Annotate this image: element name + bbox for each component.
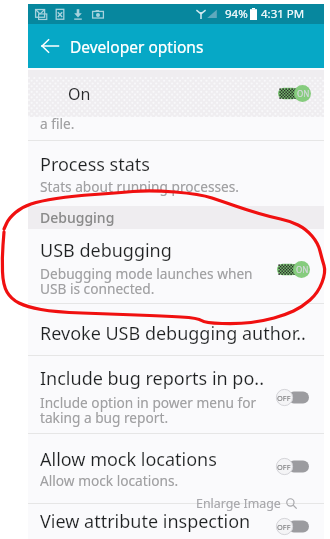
- staticText: Allow mock locations.: [40, 471, 179, 490]
- button[interactable]: [28, 447, 324, 473]
- staticText: Include option in power menu for: [40, 393, 257, 412]
- staticText: Process stats: [40, 152, 150, 177]
- staticText: USB is connected.: [40, 279, 155, 298]
- staticText: OFF: [277, 462, 291, 472]
- staticText: ON: [296, 264, 309, 275]
- staticText: OFF: [277, 522, 291, 532]
- staticText: View attribute inspection: [40, 509, 251, 534]
- staticText: Stats about running processes.: [40, 177, 239, 196]
- staticText: Enlarge Image: [196, 495, 281, 512]
- staticText: Debugging mode launches when: [40, 264, 253, 283]
- button[interactable]: [28, 366, 324, 392]
- staticText: taking a bug report.: [40, 408, 169, 427]
- staticText: Include bug reports in po..: [40, 366, 264, 391]
- button[interactable]: [28, 152, 324, 178]
- staticText: Developer options: [70, 36, 204, 57]
- button[interactable]: [28, 238, 324, 264]
- staticText: ON: [297, 88, 310, 99]
- staticText: On: [68, 83, 91, 105]
- staticText: 94%: [225, 6, 248, 22]
- staticText: Revoke USB debugging author..: [40, 321, 306, 346]
- button[interactable]: [28, 509, 324, 535]
- staticText: OFF: [277, 393, 291, 403]
- staticText: Allow mock locations: [40, 447, 217, 472]
- staticText: USB debugging: [40, 238, 172, 263]
- staticText: 4:31 PM: [261, 6, 305, 22]
- button[interactable]: On: [28, 70, 324, 117]
- staticText: a file.: [40, 114, 75, 133]
- staticText: Debugging: [40, 208, 115, 227]
- button[interactable]: Back: [33, 24, 67, 68]
- button[interactable]: [28, 321, 324, 347]
